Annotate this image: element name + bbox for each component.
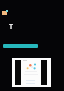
staticText: T: [9, 22, 14, 32]
button[interactable]: [12, 58, 51, 87]
button[interactable]: Home: [2, 10, 8, 16]
button[interactable]: Get started: [3, 44, 38, 48]
